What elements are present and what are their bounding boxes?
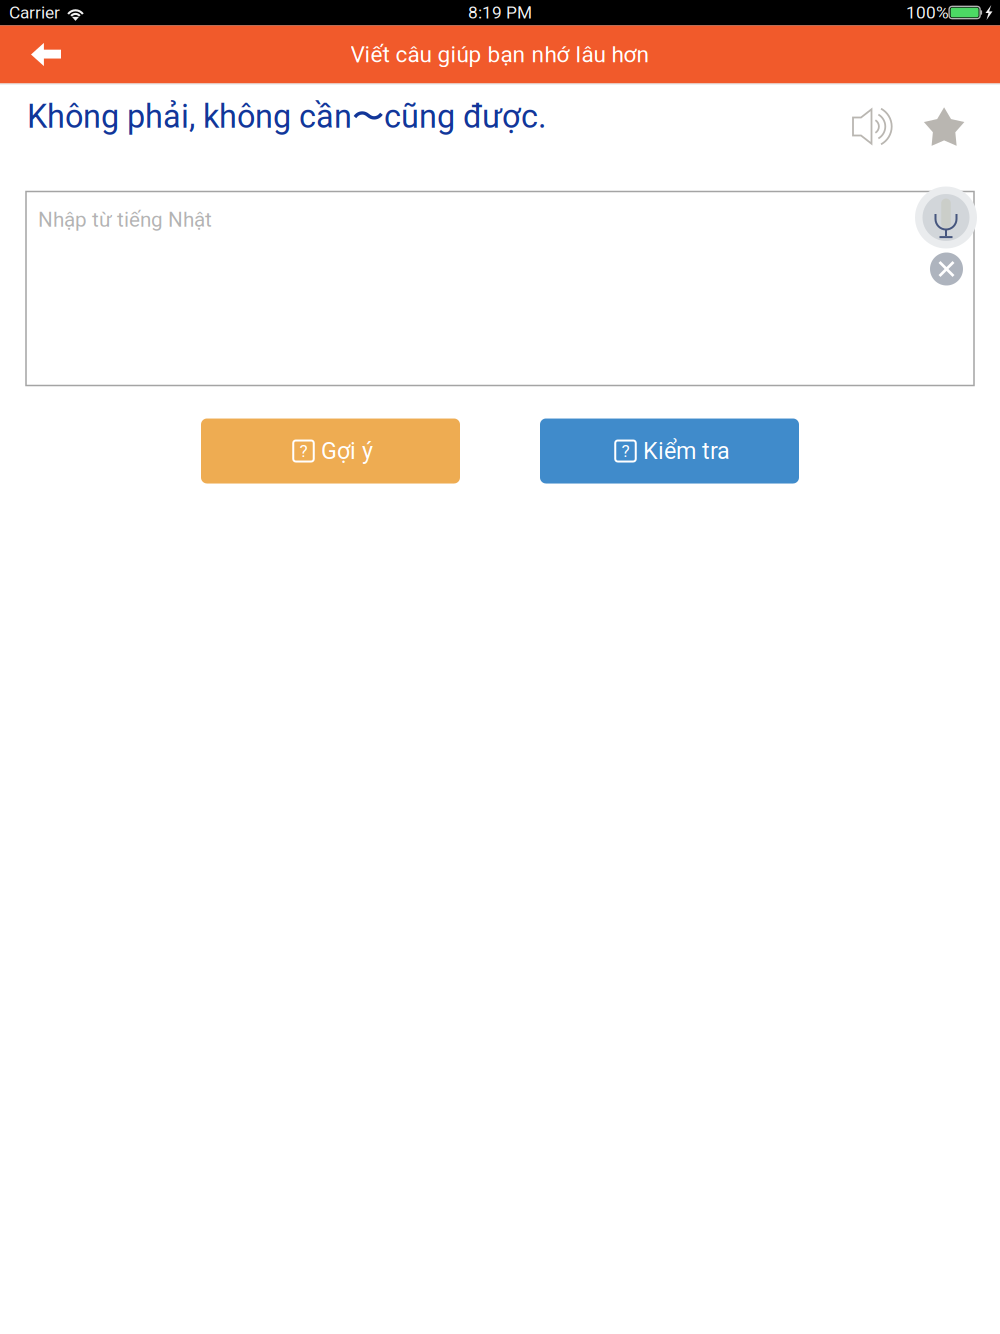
staticText: Không phải, không cần〜cũng được. bbox=[27, 96, 547, 137]
button[interactable]: Favourite bbox=[921, 103, 967, 149]
staticText: ? bbox=[299, 441, 307, 461]
button[interactable]: ? bbox=[540, 418, 799, 483]
button[interactable]: Clear text bbox=[930, 252, 963, 285]
staticText: 100% bbox=[906, 2, 949, 23]
staticText: Kiểm tra bbox=[643, 437, 730, 465]
staticText: Viết câu giúp bạn nhớ lâu hơn bbox=[350, 41, 649, 68]
staticText: ? bbox=[621, 441, 629, 461]
button[interactable]: Voice input bbox=[915, 186, 977, 248]
staticText: Carrier bbox=[9, 2, 60, 23]
staticText: Nhập từ tiếng Nhật bbox=[38, 207, 212, 232]
staticText: Gợi ý bbox=[321, 437, 373, 465]
button[interactable]: ? bbox=[201, 418, 460, 483]
button[interactable]: Back bbox=[0, 25, 92, 83]
staticText: 8:19 PM bbox=[468, 2, 532, 23]
button[interactable]: Play audio bbox=[846, 103, 898, 149]
